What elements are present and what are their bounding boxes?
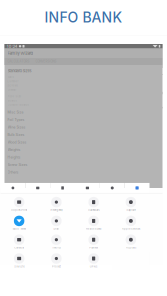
staticText: Payment [89, 246, 98, 249]
button[interactable]: Calendar [0, 232, 38, 251]
button[interactable]: Mail [75, 183, 100, 193]
staticText: SIM Lite [14, 265, 24, 268]
button[interactable]: Screw Sizes [7, 161, 162, 168]
button[interactable]: Payment [75, 232, 112, 251]
staticText: Wine Sizes [7, 125, 25, 129]
staticText: Wood Sizes [7, 140, 26, 144]
staticText: Bulb Sizes [7, 133, 24, 137]
button[interactable]: Save [50, 183, 75, 193]
staticText: Project [52, 265, 61, 268]
button[interactable]: Message [100, 183, 125, 193]
staticText: Health Sched [86, 227, 102, 230]
staticText: Family Wizard [7, 51, 32, 56]
staticText: 10:24 [7, 44, 18, 49]
button[interactable]: UPNS [75, 251, 112, 270]
staticText: Heights [7, 155, 20, 159]
staticText: Screw Sizes [7, 163, 27, 167]
staticText: Nails [7, 75, 13, 79]
staticText: Emergency [50, 209, 62, 212]
button[interactable]: Apple Services [112, 214, 149, 232]
staticText: Weights [7, 148, 20, 152]
staticText: Calendars [88, 209, 99, 212]
staticText: Capture [126, 209, 135, 212]
button[interactable]: Project [38, 251, 75, 270]
staticText: Apple Services [122, 227, 140, 230]
button[interactable]: Emergency [38, 195, 75, 214]
staticText: Drywall [7, 88, 16, 91]
button[interactable]: Copies Print [0, 195, 38, 214]
staticText: Others [7, 170, 18, 174]
button[interactable]: Invoice [38, 232, 75, 251]
staticText: Invoice [52, 246, 60, 249]
staticText: Foil Types [7, 118, 24, 122]
button[interactable]: Health Sched [75, 214, 112, 232]
staticText: Draft [53, 227, 59, 230]
staticText: UPNS [90, 265, 98, 268]
button[interactable]: Capture [112, 195, 149, 214]
staticText: Misc Size [7, 110, 23, 114]
button[interactable]: More [125, 183, 149, 193]
staticText: Turbo Tweet [12, 227, 26, 230]
staticText: Standard Sizes [7, 69, 31, 73]
button[interactable]: Turbo Tweet [0, 214, 38, 232]
button[interactable]: Copy [0, 183, 25, 193]
button[interactable]: SIM Lite [0, 251, 38, 270]
button[interactable]: Calendars [75, 195, 112, 214]
button[interactable]: Draft [38, 214, 75, 232]
button[interactable]: Accounts [112, 232, 149, 251]
button[interactable]: Print [25, 183, 50, 193]
staticText: Calendar [14, 246, 24, 249]
staticText: INFO BANK [44, 9, 122, 26]
staticText: Copies Print [11, 209, 27, 212]
staticText: Accounts [126, 246, 136, 249]
button[interactable]: Bulb Sizes [7, 131, 162, 138]
